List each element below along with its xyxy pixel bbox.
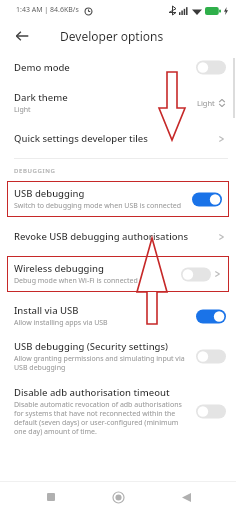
button[interactable]: Demo mode [0, 52, 236, 85]
staticText: USB debugging (Security settings) [14, 340, 169, 353]
button[interactable]: Back [169, 482, 203, 512]
staticText: USB debugging [14, 187, 85, 200]
staticText: Allow granting permissions and simulatin… [14, 354, 188, 372]
button[interactable]: Quick settings developer tiles [0, 125, 236, 152]
staticText: Switch to debugging mode when USB is con… [14, 201, 181, 211]
button[interactable]: USB debugging [7, 181, 229, 217]
staticText: Demo mode [14, 61, 70, 74]
staticText: DEBUGGING [14, 167, 56, 175]
button[interactable]: USB debugging (Security settings) [0, 338, 236, 382]
staticText: Developer options [60, 28, 164, 44]
staticText: Dark theme [14, 91, 68, 104]
staticText: Revoke USB debugging authorisations [14, 230, 217, 243]
button[interactable]: Wireless debugging [7, 256, 229, 292]
staticText: Wireless debugging [14, 262, 104, 275]
button[interactable]: Disable adb authorisation timeout [0, 382, 236, 444]
staticText: Light [197, 98, 215, 108]
staticText: Quick settings developer tiles [14, 132, 217, 145]
button[interactable]: Home [101, 482, 135, 512]
staticText: Disable automatic revocation of adb auth… [14, 400, 188, 436]
staticText: Allow installing apps via USB [14, 318, 108, 328]
button[interactable]: Dark theme [0, 85, 236, 121]
staticText: Disable adb authorisation timeout [14, 386, 170, 399]
button[interactable]: Recents [34, 482, 68, 512]
button[interactable]: Back [9, 23, 35, 49]
staticText: Install via USB [14, 304, 79, 317]
button[interactable]: Install via USB [0, 300, 236, 338]
staticText: Light [14, 105, 31, 115]
button[interactable]: Revoke USB debugging authorisations [0, 223, 236, 250]
staticText: Debug mode when Wi-Fi is connected [14, 276, 138, 286]
staticText: 1:43 AM | 84.6KB/s [16, 5, 79, 15]
